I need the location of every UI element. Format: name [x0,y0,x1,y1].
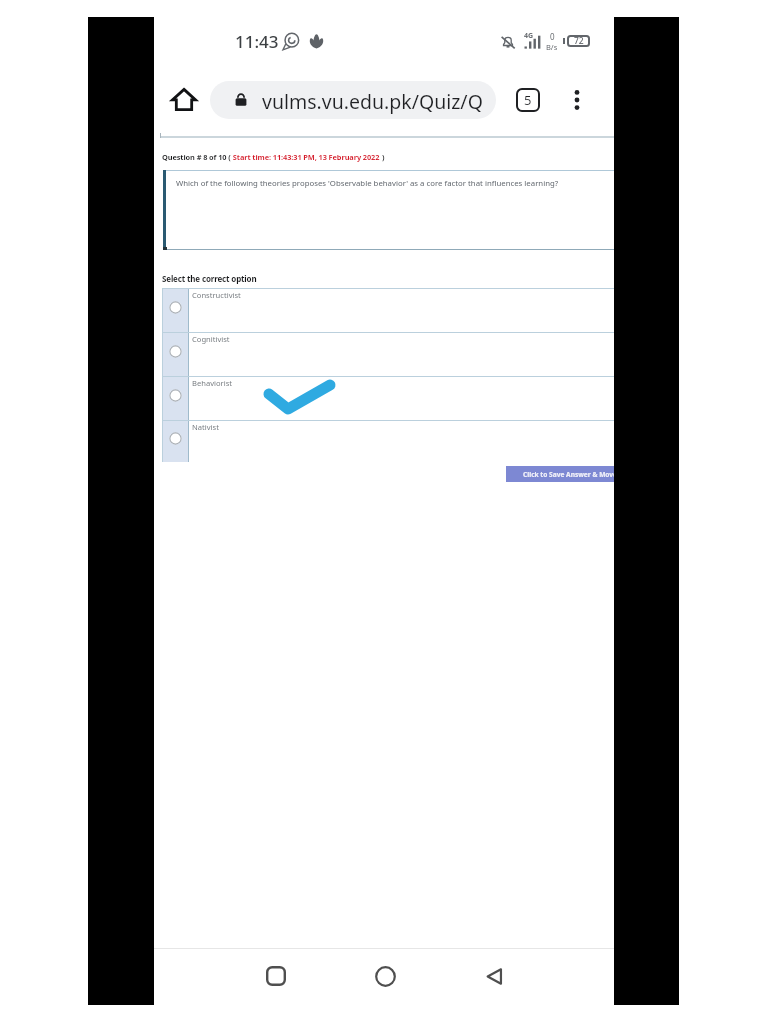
staticText: Nativist [192,422,219,432]
button[interactable]: Behaviorist [162,377,614,420]
staticText: 4G [524,31,534,41]
button[interactable]: Back [474,956,514,996]
staticText: Constructivist [192,290,241,300]
button[interactable]: Tabs [516,88,540,112]
button[interactable]: Home [171,86,197,112]
button[interactable]: Click to Save Answer & Move to Next Ques… [506,466,614,482]
staticText: B/s [546,42,558,52]
staticText: Which of the following theories proposes… [176,178,559,189]
staticText: 0 [550,31,555,42]
button[interactable]: vulms.vu.edu.pk/Quiz/Q [210,81,496,119]
button[interactable]: Nativist [162,421,614,462]
button[interactable]: More options [565,86,589,114]
button[interactable]: Home [365,956,405,996]
staticText: Behaviorist [192,378,233,388]
staticText: Start time: 11:43:31 PM, 13 February 202… [231,152,380,162]
button[interactable]: Recent apps [256,956,296,996]
staticText: Cognitivist [192,334,230,344]
staticText: Click to Save Answer & Move to Next Ques… [523,470,614,479]
button[interactable]: Constructivist [162,289,614,332]
staticText: Select the correct option [162,273,257,284]
staticText: vulms.vu.edu.pk/Quiz/Q [262,88,483,115]
button[interactable]: Cognitivist [162,333,614,376]
staticText: 5 [524,91,532,109]
staticText: Question # 8 of 10 ( [162,152,231,162]
staticText: ) [380,152,385,162]
staticText: 11:43 [235,30,279,53]
staticText: 72 [574,35,584,47]
